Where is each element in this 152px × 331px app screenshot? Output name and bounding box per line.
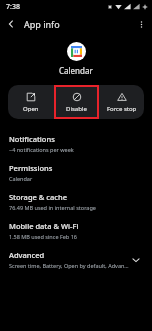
button[interactable]: Notifications: [0, 129, 152, 158]
staticText: Mobile data & Wi-Fi: [9, 221, 79, 231]
staticText: Calendar: [9, 175, 33, 182]
other: Expand: [129, 253, 143, 267]
staticText: Force stop: [107, 105, 137, 113]
button[interactable]: Back: [0, 13, 22, 35]
staticText: Screen time, Battery, Open by default, A…: [9, 262, 129, 269]
staticText: ~4 notifications per week: [9, 146, 74, 153]
button[interactable]: Force stop: [99, 85, 144, 119]
staticText: 76.49 MB used in internal storage: [9, 204, 96, 211]
staticText: Disable: [66, 105, 87, 113]
staticText: Permissions: [9, 163, 53, 173]
staticText: Calendar: [59, 65, 93, 76]
button[interactable]: Advanced: [0, 245, 152, 274]
staticText: 1.58 MB used since Feb 16: [9, 233, 77, 240]
staticText: Advanced: [9, 250, 45, 260]
staticText: 7:38: [6, 2, 20, 12]
button[interactable]: Disable: [54, 85, 99, 119]
staticText: Open: [23, 105, 39, 113]
button[interactable]: Permissions: [0, 158, 152, 187]
staticText: Notifications: [9, 134, 55, 144]
staticText: Storage & cache: [9, 192, 67, 202]
button[interactable]: More options: [130, 13, 152, 35]
staticText: App info: [24, 18, 60, 30]
button[interactable]: Open: [8, 85, 54, 119]
button[interactable]: Mobile data & Wi-Fi: [0, 216, 152, 245]
button[interactable]: Storage & cache: [0, 187, 152, 216]
